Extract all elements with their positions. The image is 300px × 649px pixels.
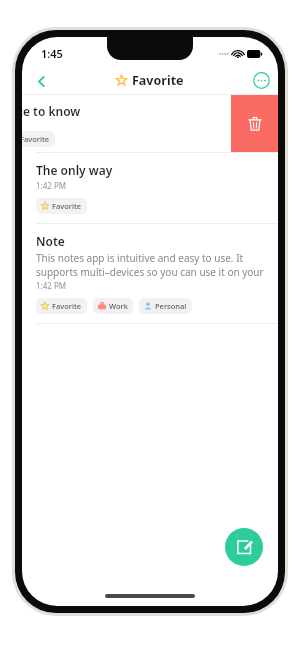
staticText: supports multi–devices so you can use it… <box>36 265 268 279</box>
staticText: Nice to know <box>22 103 81 119</box>
button[interactable]: More options <box>253 72 270 89</box>
button[interactable]: Favorite <box>22 131 55 147</box>
staticText: 1:45 <box>41 46 63 61</box>
button[interactable]: Work <box>93 298 133 314</box>
staticText: The only way <box>36 162 113 178</box>
staticText: This notes app is intuitive and easy to … <box>36 251 244 265</box>
button[interactable]: Favorite <box>36 298 87 314</box>
staticText: 1:42 PM <box>36 180 67 191</box>
staticText: Favorite <box>132 72 184 89</box>
staticText: Favorite <box>52 301 82 311</box>
staticText: 1:42 PM <box>36 280 67 291</box>
button[interactable]: Delete <box>231 95 278 152</box>
button[interactable]: The only way <box>22 153 278 223</box>
staticText: Favorite <box>22 134 50 144</box>
button[interactable]: Favorite <box>36 198 87 214</box>
button[interactable]: Personal <box>139 298 192 314</box>
staticText: Favorite <box>52 201 82 211</box>
staticText: Note <box>36 233 65 249</box>
staticText: Personal <box>155 301 187 311</box>
button[interactable]: Compose new note <box>225 528 263 566</box>
button[interactable]: Back <box>28 68 54 94</box>
staticText: Work <box>109 301 128 311</box>
button[interactable]: Note <box>22 224 278 323</box>
